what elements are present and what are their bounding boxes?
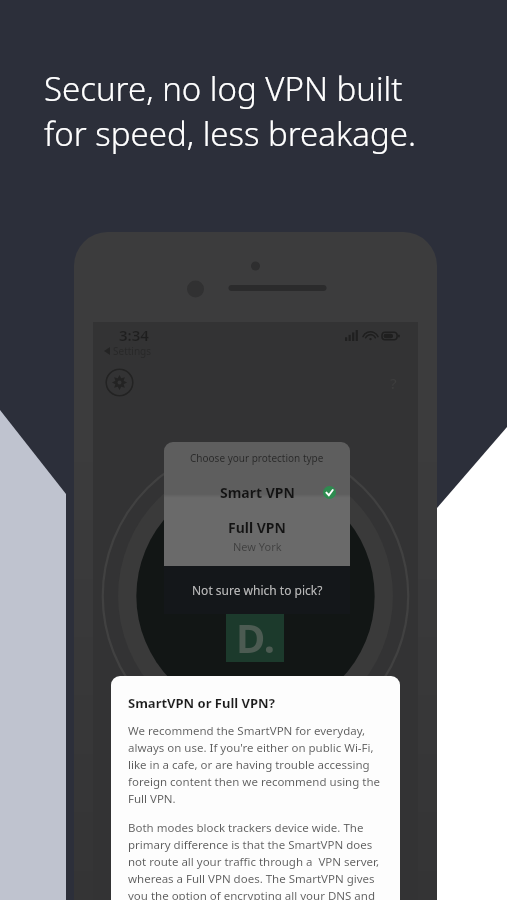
staticText: We recommend the SmartVPN for everyday, … [128, 723, 385, 807]
staticText: 3:34 [119, 325, 149, 345]
button[interactable]: Not sure which to pick? [164, 566, 350, 614]
staticText: Full VPN [228, 518, 286, 537]
button[interactable]: Smart VPN [164, 476, 350, 508]
staticText: New York [233, 539, 282, 554]
staticText: for speed, less breakage. [44, 111, 417, 156]
staticText: Not sure which to pick? [192, 582, 323, 598]
staticText: Both modes block trackers device wide. T… [128, 820, 385, 900]
staticText: Choose your protection type [190, 451, 324, 465]
staticText: D. [236, 610, 275, 662]
staticText: Smart VPN [220, 483, 295, 502]
button[interactable]: Full VPN [164, 518, 350, 554]
button[interactable]: Settings [96, 343, 160, 359]
staticText: SmartVPN or Full VPN? [128, 694, 275, 712]
button[interactable]: Settings [105, 368, 134, 397]
staticText: Secure, no log VPN built [44, 66, 403, 111]
staticText: Settings [113, 344, 152, 358]
